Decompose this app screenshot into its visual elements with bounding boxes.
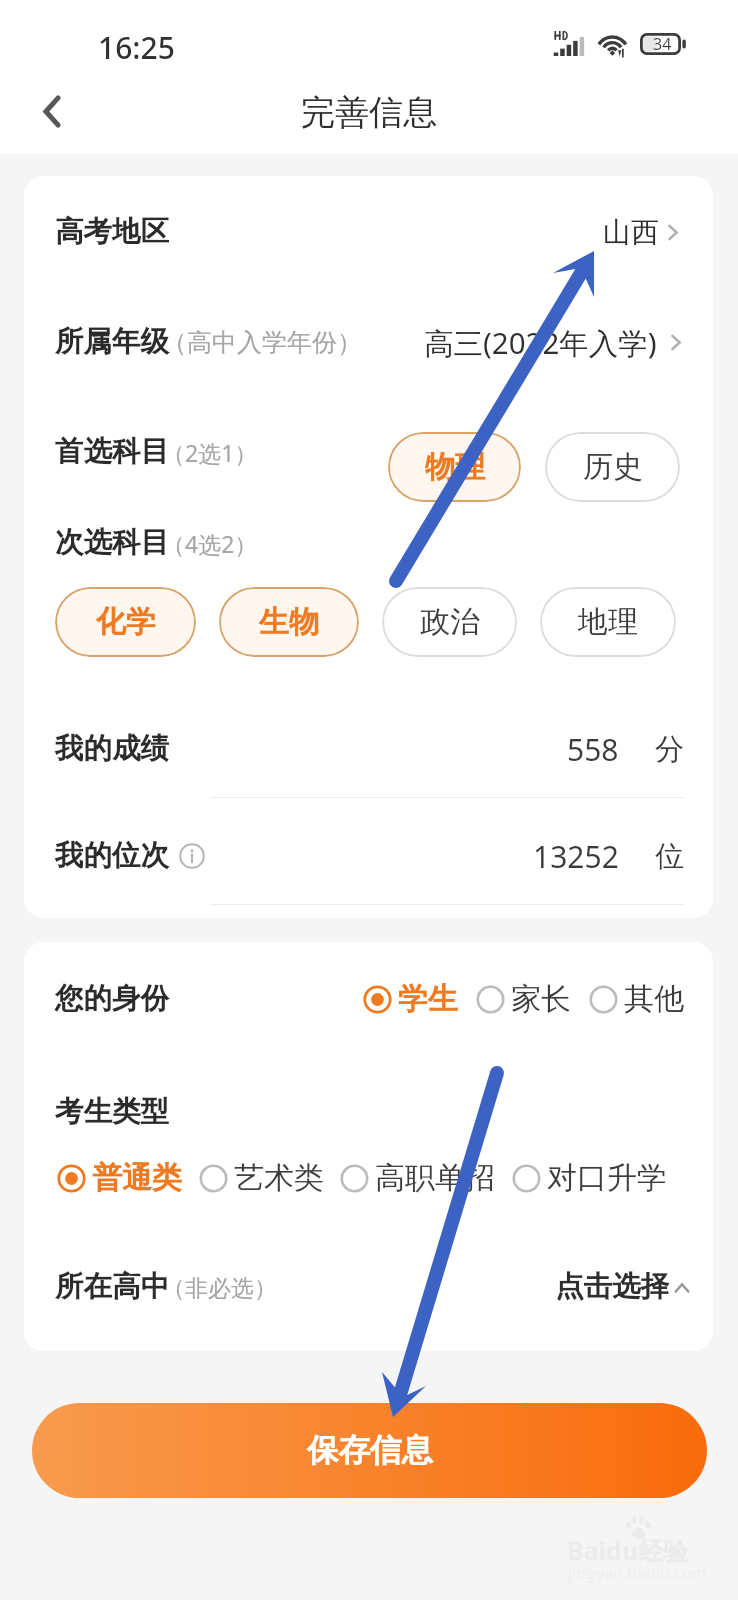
- button[interactable]: 所在高中: [24, 1245, 713, 1329]
- staticText: 高考地区: [55, 214, 169, 250]
- staticText: 家长: [511, 980, 571, 1018]
- button[interactable]: 其他: [589, 980, 684, 1018]
- button[interactable]: 对口升学: [512, 1159, 667, 1197]
- button[interactable]: 地理: [540, 587, 676, 657]
- staticText: （4选2）: [162, 528, 258, 559]
- staticText: 山西: [603, 215, 659, 250]
- staticText: 位: [655, 838, 684, 875]
- staticText: 所属年级: [55, 324, 169, 360]
- staticText: 保存信息: [307, 1431, 433, 1471]
- staticText: 您的身份: [55, 981, 169, 1017]
- staticText: 考生类型: [55, 1094, 169, 1130]
- button[interactable]: 保存信息: [32, 1403, 707, 1498]
- staticText: 点击选择: [555, 1269, 669, 1305]
- staticText: （非必选）: [162, 1274, 277, 1303]
- staticText: 对口升学: [547, 1159, 667, 1197]
- staticText: Baidu经验: [567, 1533, 689, 1567]
- staticText: 我的位次: [55, 838, 169, 874]
- staticText: 首选科目: [55, 434, 169, 470]
- staticText: 34: [653, 33, 672, 55]
- button[interactable]: Back: [12, 71, 92, 151]
- staticText: 高三(2022年入学): [424, 322, 657, 362]
- button[interactable]: 化学: [55, 587, 196, 657]
- staticText: 分: [655, 731, 684, 768]
- staticText: 次选科目: [55, 525, 169, 561]
- staticText: 我的成绩: [55, 731, 169, 767]
- staticText: 政治: [420, 603, 480, 641]
- button[interactable]: 学生: [363, 980, 458, 1018]
- staticText: 完善信息: [301, 91, 437, 134]
- staticText: 艺术类: [234, 1159, 324, 1197]
- staticText: 其他: [624, 980, 684, 1018]
- staticText: 所在高中: [55, 1269, 169, 1305]
- staticText: 历史: [583, 448, 643, 486]
- staticText: 13252: [533, 836, 619, 877]
- button[interactable]: 历史: [545, 432, 680, 502]
- staticText: （高中入学年份）: [162, 327, 362, 358]
- button[interactable]: 艺术类: [199, 1159, 324, 1197]
- button[interactable]: 政治: [382, 587, 517, 657]
- button[interactable]: 我的位次: [24, 814, 713, 898]
- staticText: 普通类: [92, 1159, 182, 1197]
- staticText: 高职单招: [375, 1159, 495, 1197]
- button[interactable]: 物理: [388, 432, 521, 502]
- button[interactable]: 所属年级: [24, 300, 713, 384]
- staticText: 16:25: [98, 27, 175, 68]
- button[interactable]: 我的成绩: [24, 707, 713, 791]
- button[interactable]: 高考地区: [24, 190, 713, 274]
- button[interactable]: 普通类: [57, 1159, 182, 1197]
- staticText: （2选1）: [162, 437, 258, 468]
- button[interactable]: 高职单招: [340, 1159, 495, 1197]
- staticText: 学生: [398, 980, 458, 1018]
- staticText: 生物: [259, 603, 319, 641]
- button[interactable]: 家长: [476, 980, 571, 1018]
- staticText: 物理: [425, 448, 485, 486]
- staticText: 地理: [578, 603, 638, 641]
- staticText: 化学: [96, 603, 156, 641]
- button[interactable]: 生物: [219, 587, 359, 657]
- staticText: 558: [567, 729, 619, 770]
